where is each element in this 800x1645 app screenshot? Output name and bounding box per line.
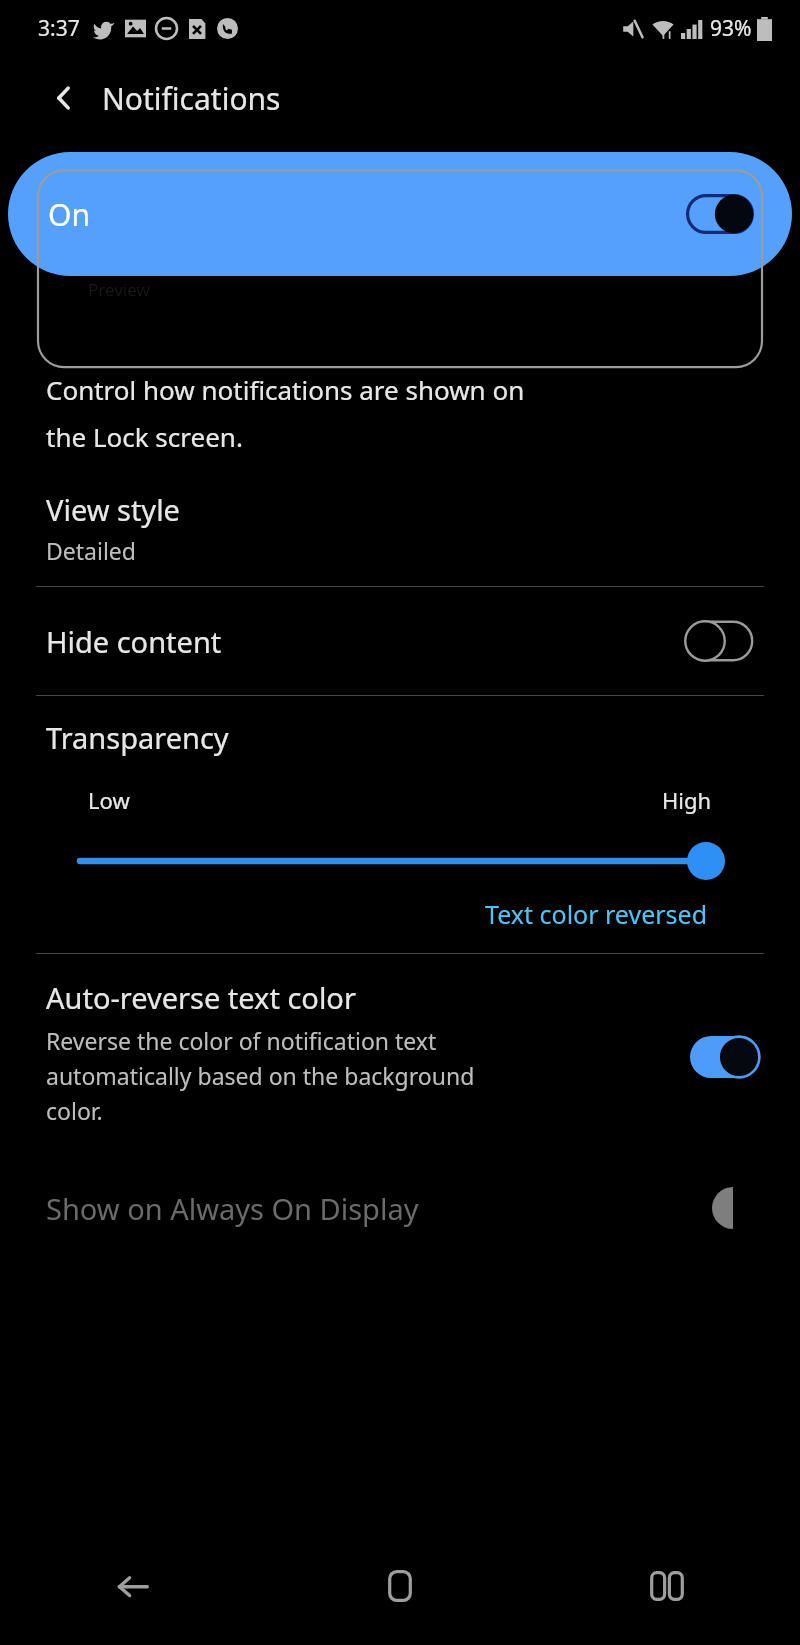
button[interactable]: Back bbox=[42, 76, 86, 120]
button[interactable]: Transparency slider bbox=[0, 839, 800, 883]
staticText: View style bbox=[46, 490, 180, 529]
button[interactable]: Auto-reverse text color bbox=[0, 954, 800, 1136]
staticText: Auto-reverse text color bbox=[46, 978, 356, 1017]
staticText: Hide content bbox=[46, 622, 684, 661]
staticText: automatically based on the background bbox=[46, 1060, 475, 1091]
staticText: Preview bbox=[88, 278, 150, 301]
staticText: Detailed bbox=[46, 535, 136, 566]
staticText: Control how notifications are shown on bbox=[46, 372, 525, 407]
button[interactable]: View style bbox=[0, 488, 800, 568]
staticText: the Lock screen. bbox=[46, 419, 243, 454]
staticText: Notifications bbox=[102, 78, 281, 119]
staticText: High bbox=[662, 785, 712, 815]
button[interactable]: On bbox=[8, 152, 792, 276]
button[interactable]: Back bbox=[91, 1544, 175, 1628]
staticText: 3:37 bbox=[38, 14, 80, 43]
staticText: Low bbox=[88, 785, 130, 815]
staticText: 93% bbox=[710, 14, 752, 43]
button[interactable]: Recents bbox=[625, 1544, 709, 1628]
staticText: Transparency bbox=[46, 718, 229, 757]
staticText: Show on Always On Display bbox=[46, 1189, 714, 1228]
button[interactable]: Show on Always On Display bbox=[0, 1158, 800, 1258]
button[interactable]: Hide content bbox=[0, 587, 800, 695]
staticText: Reverse the color of notification text bbox=[46, 1025, 437, 1056]
button[interactable]: Home bbox=[358, 1544, 442, 1628]
staticText: Text color reversed bbox=[485, 897, 708, 931]
staticText: On bbox=[48, 194, 90, 235]
button[interactable]: Text color reversed bbox=[485, 897, 708, 931]
staticText: color. bbox=[46, 1095, 103, 1126]
